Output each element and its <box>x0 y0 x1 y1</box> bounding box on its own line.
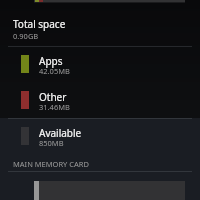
staticText: Other <box>39 90 67 104</box>
staticText: 31.46MB <box>39 102 70 112</box>
staticText: Available <box>39 126 82 140</box>
staticText: 42.05MB <box>39 66 70 76</box>
button[interactable]: Total space <box>0 14 200 44</box>
staticText: Total space <box>13 17 66 31</box>
staticText: 0.90GB <box>13 31 39 41</box>
staticText: 850MB <box>39 138 64 148</box>
button[interactable]: Other <box>0 84 200 120</box>
button[interactable]: Main memory card storage usage <box>34 181 185 200</box>
button[interactable]: Available <box>0 120 200 156</box>
staticText: Apps <box>39 54 63 68</box>
button[interactable]: Apps <box>0 48 200 84</box>
staticText: MAIN MEMORY CARD <box>13 159 89 169</box>
